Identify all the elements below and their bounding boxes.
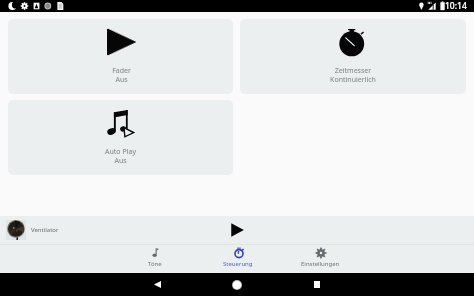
button[interactable]: Auto Play Aus — [8, 100, 233, 175]
button[interactable]: Ventilator artwork — [6, 220, 26, 240]
staticText: 10:14 — [445, 0, 467, 12]
staticText: Einstellungen — [301, 260, 340, 268]
button[interactable]: Zeitmesser Kontinuierlich — [240, 19, 466, 94]
button[interactable]: Steuerung — [196, 244, 279, 273]
staticText: Töne — [148, 260, 162, 268]
button[interactable]: Play — [224, 217, 250, 243]
staticText: Zeitmesser Kontinuierlich — [330, 66, 376, 84]
staticText: Steuerung — [223, 260, 253, 268]
button[interactable]: Töne — [113, 244, 196, 273]
button[interactable]: Home — [197, 273, 277, 296]
staticText: Ventilator — [31, 226, 59, 234]
staticText: Fader Aus — [112, 66, 131, 84]
button[interactable]: Recent apps — [277, 273, 357, 296]
button[interactable]: Fader Aus — [8, 19, 233, 94]
staticText: Auto Play Aus — [105, 147, 136, 165]
button[interactable]: Back — [117, 273, 197, 296]
button[interactable]: Einstellungen — [279, 244, 362, 273]
